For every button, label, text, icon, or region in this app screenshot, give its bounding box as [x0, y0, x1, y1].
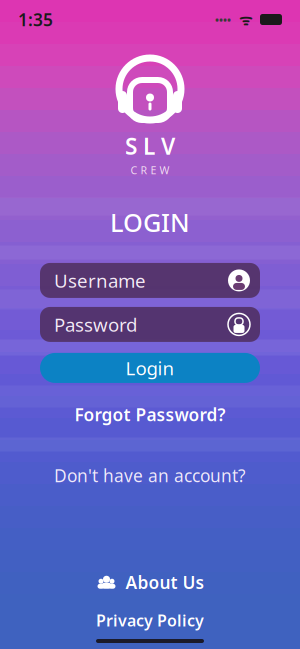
button[interactable]: About Us — [85, 567, 214, 598]
staticText: Password — [54, 312, 137, 337]
staticText: ᯤ — [239, 10, 252, 29]
button[interactable]: Username — [40, 263, 260, 298]
staticText: S L V — [125, 131, 175, 161]
button[interactable]: Password — [40, 307, 260, 342]
button[interactable]: Don't have an account? — [44, 460, 256, 491]
staticText: Don't have an account? — [54, 464, 246, 487]
staticText: •••• — [215, 12, 231, 27]
button[interactable]: Privacy Policy — [86, 608, 214, 633]
staticText: 1:35 — [18, 8, 53, 31]
staticText: Login — [125, 355, 174, 380]
staticText: About Us — [125, 571, 204, 594]
staticText: Privacy Policy — [96, 610, 204, 631]
staticText: Username — [54, 268, 146, 293]
staticText: LOGIN — [110, 205, 190, 239]
staticText: Forgot Password? — [74, 403, 225, 426]
button[interactable]: Forgot Password? — [64, 399, 235, 430]
staticText: C R E W — [130, 163, 169, 177]
button[interactable]: Login — [40, 353, 260, 383]
